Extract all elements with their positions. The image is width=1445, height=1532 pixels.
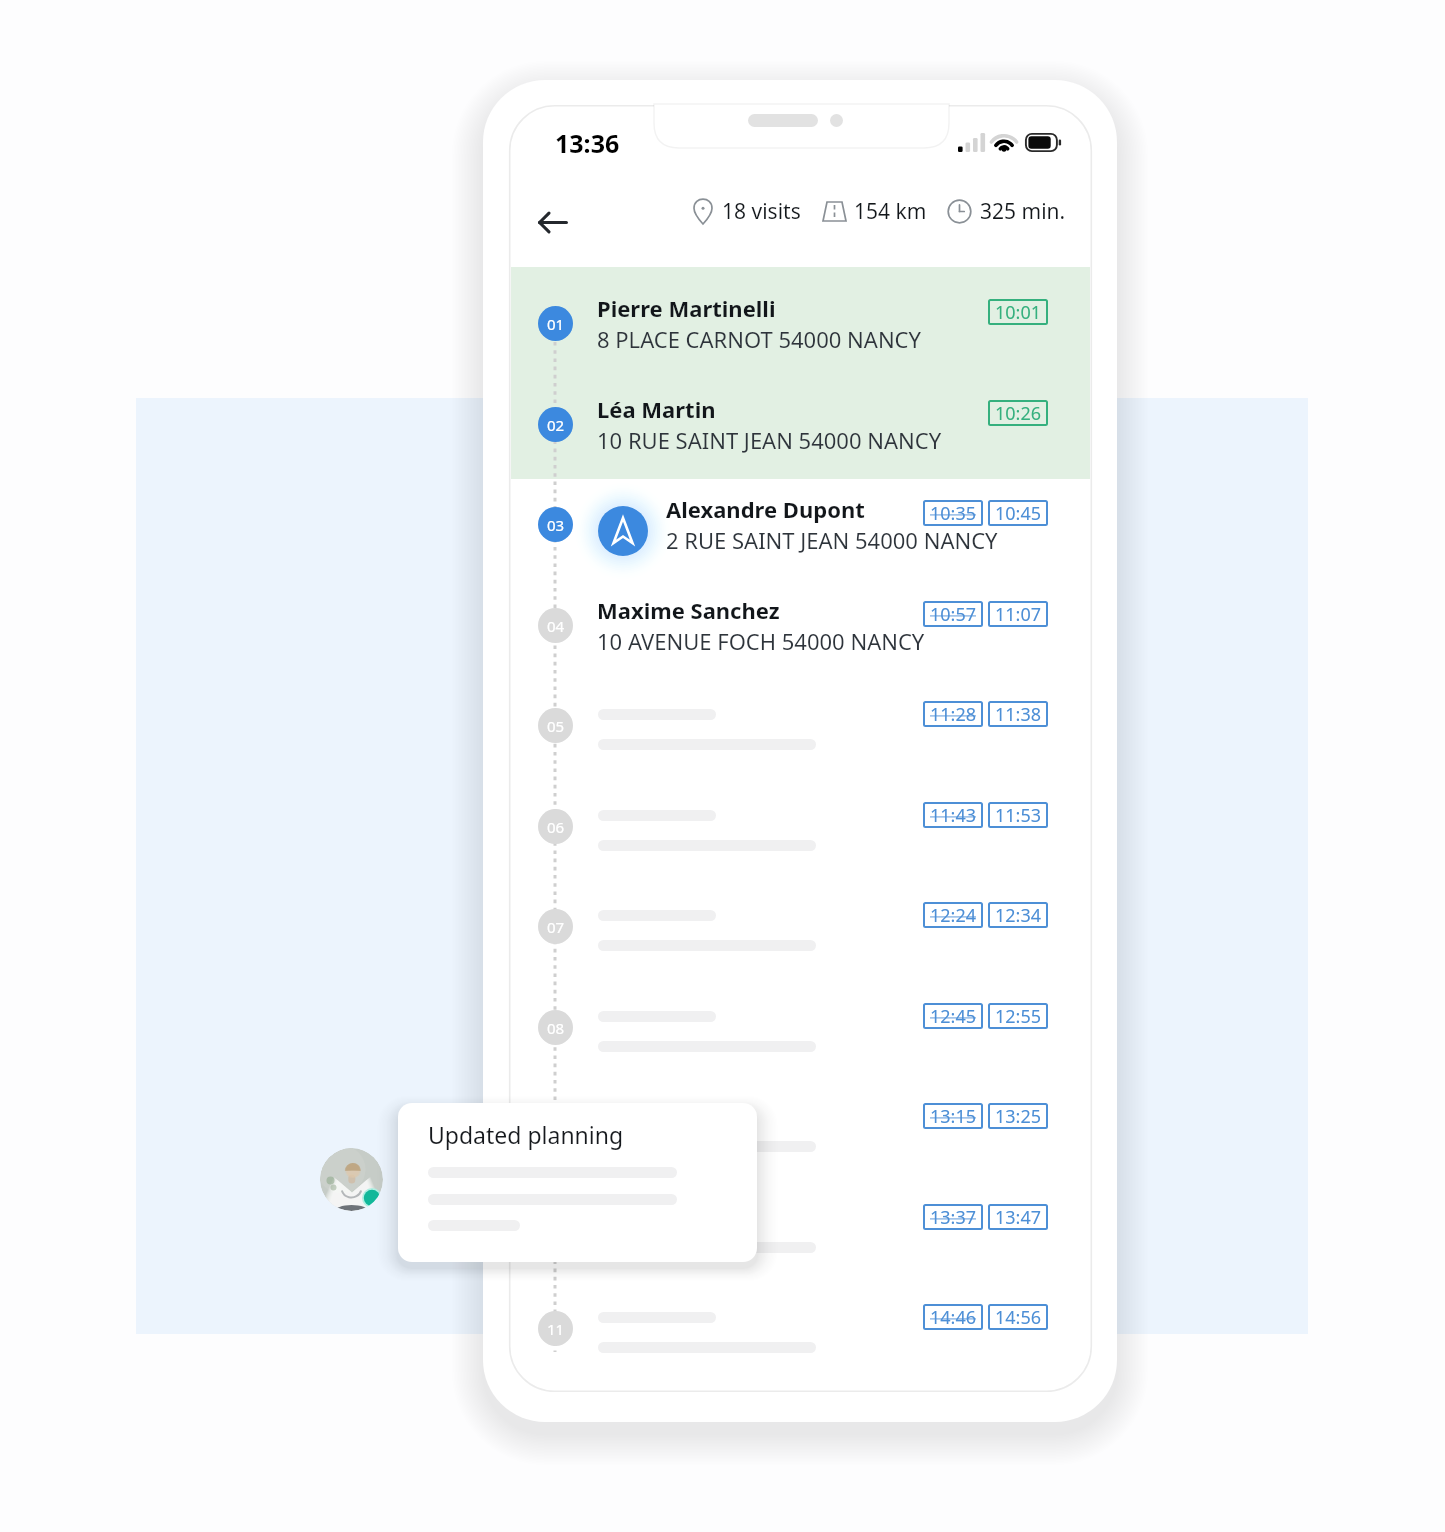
staticText: 08 xyxy=(547,1018,565,1038)
staticText: 11 xyxy=(547,1319,565,1339)
staticText: 10:57 xyxy=(930,602,977,627)
staticText: 04 xyxy=(547,616,565,636)
staticText: 14:46 xyxy=(930,1305,977,1330)
button[interactable]: 05 xyxy=(511,675,1090,775)
staticText: 12:45 xyxy=(930,1004,977,1029)
staticText: 10:26 xyxy=(995,401,1042,426)
button[interactable]: 10 xyxy=(511,1178,1090,1278)
button[interactable]: 03 xyxy=(511,474,1090,574)
button[interactable]: 08 xyxy=(511,977,1090,1077)
staticText: 11:53 xyxy=(995,803,1042,828)
button[interactable]: 07 xyxy=(511,876,1090,976)
button[interactable]: Back xyxy=(520,190,584,254)
staticText: 10:45 xyxy=(995,501,1042,526)
staticText: 13:36 xyxy=(555,126,620,160)
staticText: 2 RUE SAINT JEAN 54000 NANCY xyxy=(666,525,998,555)
button[interactable]: 06 xyxy=(511,776,1090,876)
staticText: 14:56 xyxy=(995,1305,1042,1330)
staticText: 11:28 xyxy=(930,702,977,727)
staticText: 05 xyxy=(547,716,565,736)
staticText: Alexandre Dupont xyxy=(666,494,865,524)
staticText: 11:07 xyxy=(995,602,1042,627)
staticText: 12:55 xyxy=(995,1004,1042,1029)
button[interactable]: 04 xyxy=(511,575,1090,675)
staticText: 13:15 xyxy=(930,1104,977,1129)
button[interactable]: 09 xyxy=(511,1077,1090,1177)
button[interactable]: Nurse profile, online xyxy=(320,1148,383,1211)
staticText: Updated planning xyxy=(428,1119,624,1150)
staticText: 13:37 xyxy=(930,1205,977,1230)
staticText: 154 km xyxy=(854,197,927,226)
staticText: 13:25 xyxy=(995,1104,1042,1129)
staticText: 09 xyxy=(547,1118,565,1138)
button[interactable]: 01 xyxy=(511,273,1090,373)
button[interactable]: 02 xyxy=(511,374,1090,474)
staticText: 325 min. xyxy=(980,197,1066,226)
button[interactable]: Updated planning xyxy=(398,1103,757,1262)
staticText: Léa Martin xyxy=(597,394,716,424)
staticText: 11:43 xyxy=(930,803,977,828)
staticText: 12:34 xyxy=(995,903,1042,928)
staticText: 01 xyxy=(547,314,565,334)
staticText: 06 xyxy=(547,817,565,837)
staticText: 10:35 xyxy=(930,501,977,526)
staticText: 10:01 xyxy=(995,300,1042,325)
staticText: 18 visits xyxy=(722,197,801,226)
button[interactable]: 11 xyxy=(511,1278,1090,1378)
staticText: 12:24 xyxy=(930,903,977,928)
staticText: 02 xyxy=(547,415,565,435)
staticText: Pierre Martinelli xyxy=(597,293,776,323)
staticText: Maxime Sanchez xyxy=(597,595,780,625)
staticText: 10 RUE SAINT JEAN 54000 NANCY xyxy=(597,425,942,455)
staticText: 03 xyxy=(547,515,565,535)
staticText: 11:38 xyxy=(995,702,1042,727)
staticText: 8 PLACE CARNOT 54000 NANCY xyxy=(597,324,921,354)
staticText: 13:47 xyxy=(995,1205,1042,1230)
staticText: 10 AVENUE FOCH 54000 NANCY xyxy=(597,626,925,656)
staticText: 07 xyxy=(547,917,565,937)
